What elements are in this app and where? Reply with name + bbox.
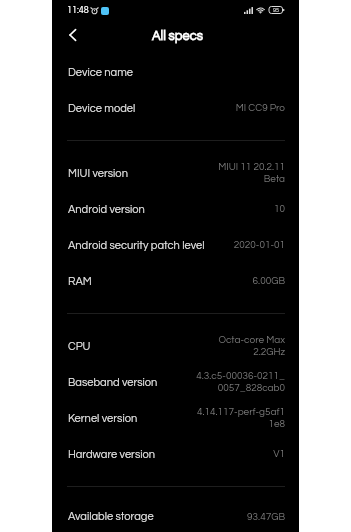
staticText: 4.3.c5-00036-0211_ 0057_828cab0 (196, 371, 285, 393)
staticText: Hardware version (68, 449, 156, 460)
button[interactable]: Kernel version (52, 400, 299, 436)
button[interactable]: RAM (52, 263, 299, 299)
button[interactable]: Device name (52, 54, 299, 90)
staticText: All specs (152, 29, 203, 42)
staticText: Android version (68, 204, 145, 215)
staticText: 10 (274, 204, 285, 214)
staticText: MI CC9 Pro (235, 103, 285, 113)
staticText: Android security patch level (68, 240, 205, 251)
staticText: RAM (68, 276, 92, 287)
staticText: 93.47GB (247, 512, 285, 522)
staticText: 2020-01-01 (233, 240, 285, 250)
staticText: 11:48 (67, 6, 89, 15)
staticText: Available storage (68, 511, 154, 522)
staticText: 95 (273, 7, 280, 13)
button[interactable]: Android security patch level (52, 227, 299, 263)
staticText: Baseband version (68, 377, 158, 388)
staticText: MIUI version (68, 168, 128, 179)
staticText: Device name (68, 67, 133, 78)
staticText: Device model (68, 103, 136, 114)
staticText: Octa-core Max 2.2GHz (218, 335, 285, 357)
staticText: MIUI 11 20.2.11 Beta (218, 162, 285, 184)
staticText: Kernel version (68, 413, 138, 424)
button[interactable]: Android version (52, 191, 299, 227)
button[interactable]: Device model (52, 90, 299, 126)
button[interactable]: CPU (52, 328, 299, 364)
button[interactable]: Back (57, 22, 83, 48)
staticText: 6.00GB (252, 276, 285, 286)
staticText: CPU (68, 341, 91, 352)
button[interactable]: MIUI version (52, 155, 299, 191)
button[interactable]: Hardware version (52, 436, 299, 472)
staticText: 4.14.117-perf-g5af1 1e8 (196, 407, 285, 429)
button[interactable]: Available storage (52, 501, 299, 532)
button[interactable]: Baseband version (52, 364, 299, 400)
staticText: V1 (273, 449, 285, 459)
